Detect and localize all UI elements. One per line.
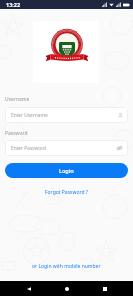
button[interactable]: Enter Password xyxy=(5,140,128,156)
button[interactable]: Forgot Password ? xyxy=(45,189,88,196)
staticText: Login xyxy=(59,167,74,174)
button[interactable]: Enter Username xyxy=(5,107,128,123)
staticText: 13:22 xyxy=(6,1,21,8)
staticText: Username xyxy=(5,96,30,103)
button[interactable]: User xyxy=(118,113,123,118)
staticText: Enter Username xyxy=(11,112,118,119)
button[interactable]: or Login with mobile number xyxy=(32,263,101,270)
staticText: Enter Password xyxy=(11,145,116,152)
staticText: Password xyxy=(5,130,28,137)
button[interactable]: Recent apps xyxy=(99,283,110,294)
button[interactable]: Back xyxy=(23,283,34,294)
button[interactable]: Login xyxy=(5,163,128,178)
button[interactable]: Home xyxy=(61,283,72,294)
button[interactable]: Show password xyxy=(116,145,123,151)
